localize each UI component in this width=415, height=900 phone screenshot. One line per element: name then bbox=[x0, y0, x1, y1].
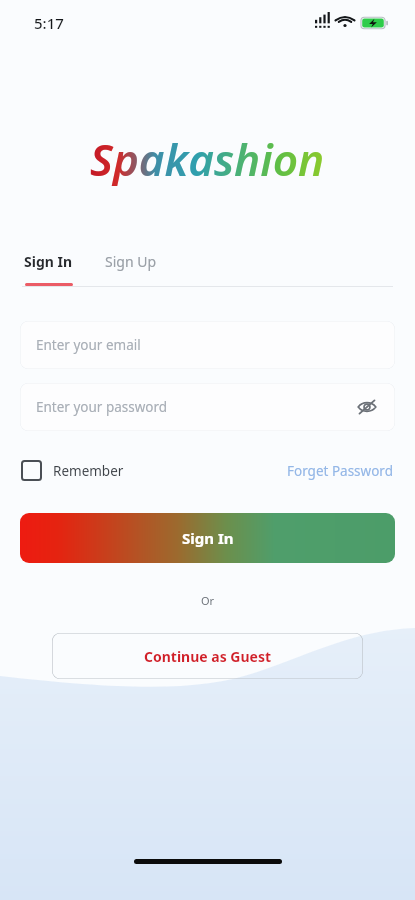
button[interactable]: Remember bbox=[22, 457, 124, 484]
staticText: Spakashion bbox=[90, 129, 325, 189]
staticText: Enter your password bbox=[36, 398, 168, 416]
staticText: Or bbox=[0, 593, 415, 608]
staticText: Sign In bbox=[24, 252, 73, 271]
staticText: Enter your email bbox=[36, 336, 141, 354]
button[interactable]: Enter your password bbox=[20, 383, 395, 431]
staticText: Forget Password bbox=[287, 462, 393, 480]
staticText: Sign In bbox=[182, 528, 234, 548]
button[interactable]: Show password bbox=[351, 391, 383, 423]
staticText: Continue as Guest bbox=[144, 647, 272, 666]
button[interactable]: Sign Up bbox=[103, 252, 159, 286]
button[interactable]: Sign In bbox=[20, 513, 395, 563]
staticText: Remember bbox=[53, 462, 124, 480]
staticText: 5:17 bbox=[34, 13, 64, 33]
button[interactable]: Forget Password bbox=[287, 458, 393, 484]
button[interactable]: Sign In bbox=[22, 252, 75, 286]
staticText: Sign Up bbox=[105, 252, 157, 271]
button[interactable]: Continue as Guest bbox=[52, 633, 363, 679]
button[interactable]: Enter your email bbox=[20, 321, 395, 369]
